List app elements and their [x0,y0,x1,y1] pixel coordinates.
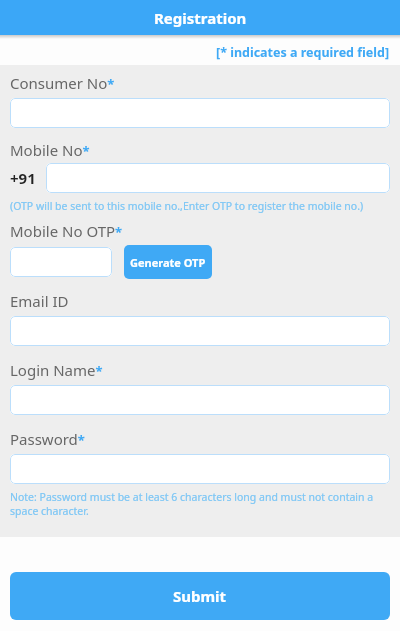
staticText: Note: Password must be at least 6 charac… [10,490,400,518]
button[interactable] [10,385,390,415]
button[interactable]: Submit [10,572,390,620]
staticText: Consumer No* [10,73,115,93]
button[interactable] [10,247,112,277]
button[interactable] [10,316,390,346]
staticText: Registration [154,8,247,28]
staticText: Email ID [10,291,69,311]
staticText: Login Name* [10,360,103,380]
staticText: Submit [173,586,227,606]
staticText: (OTP will be sent to this mobile no.,Ent… [10,199,364,213]
staticText: Generate OTP [130,255,206,270]
button[interactable]: Generate OTP [124,245,212,279]
staticText: Mobile No OTP* [10,221,123,241]
button[interactable] [10,454,390,484]
staticText: [* indicates a required field] [216,44,390,61]
button[interactable] [10,98,390,128]
button[interactable] [46,163,390,193]
staticText: Password* [10,429,85,449]
staticText: +91 [10,168,36,188]
staticText: Mobile No* [10,140,90,160]
